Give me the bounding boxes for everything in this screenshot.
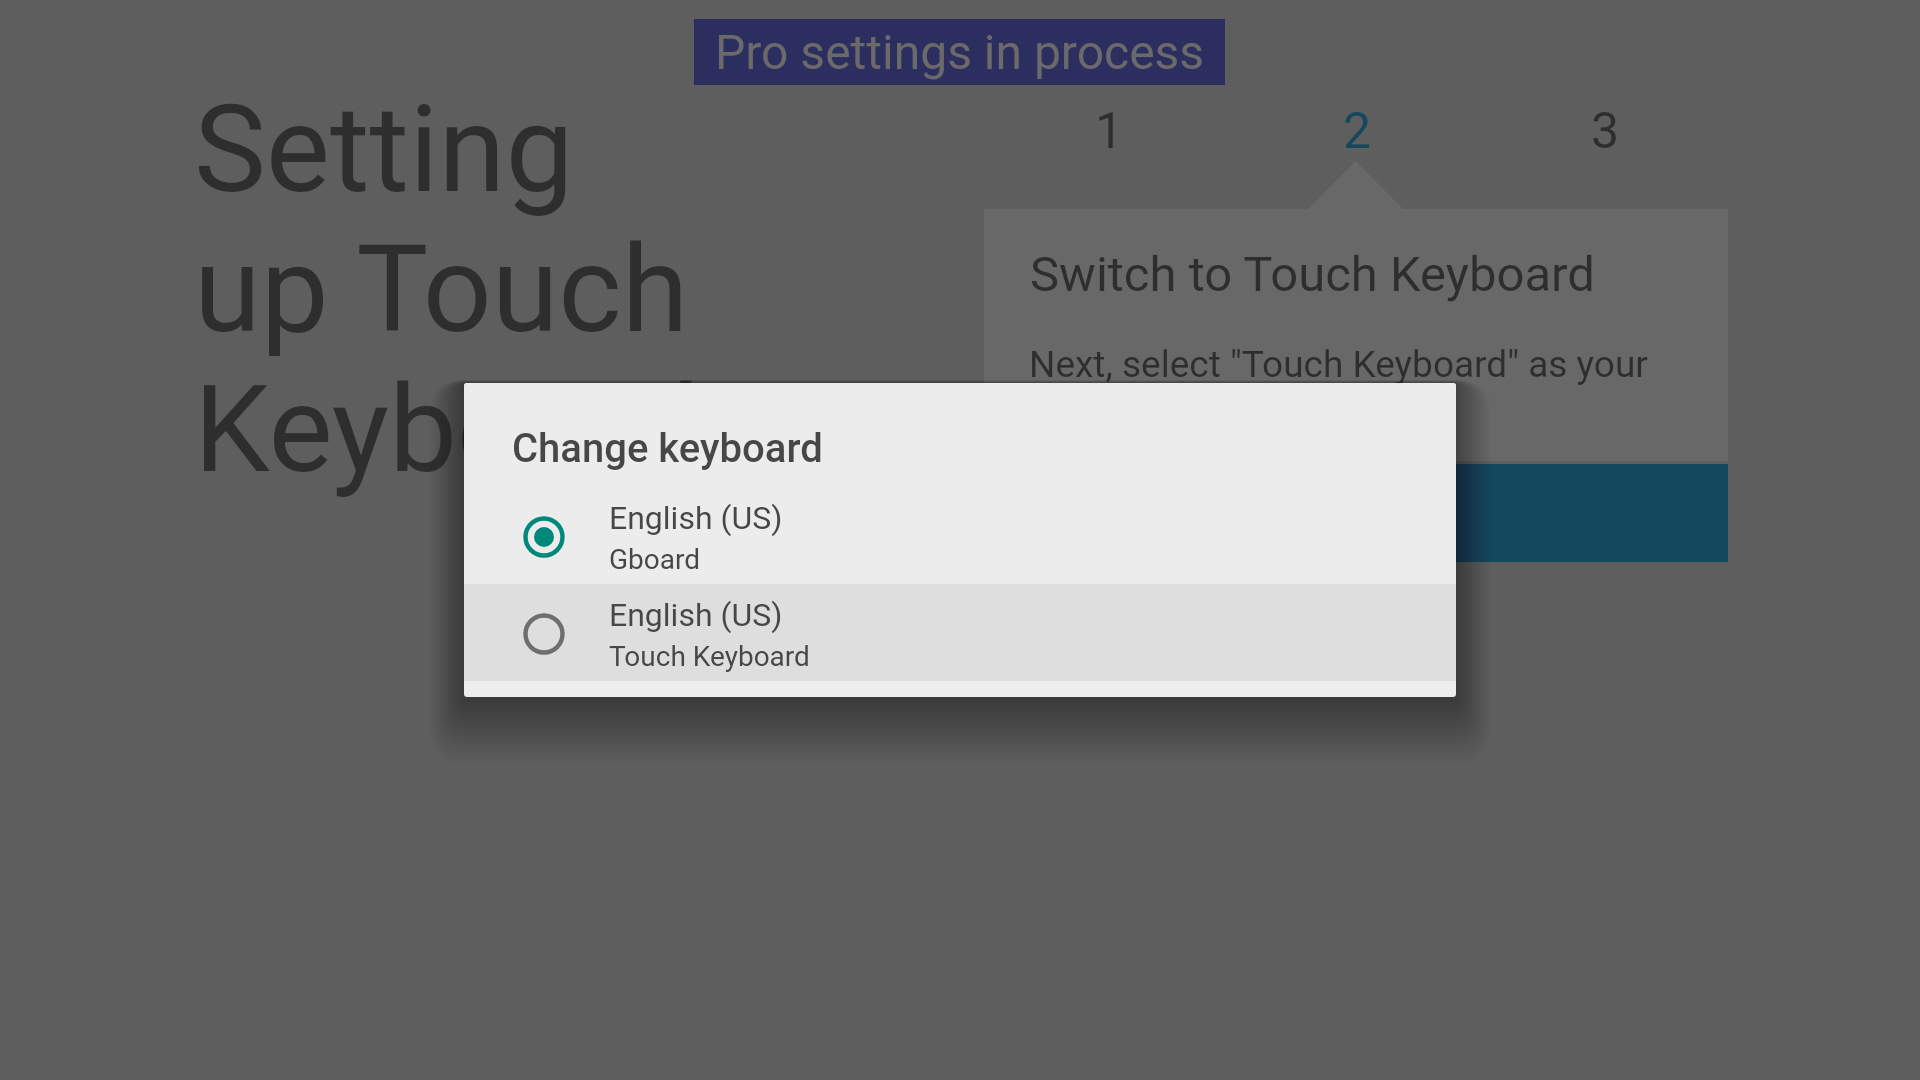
button[interactable]: Pro settings in process (694, 19, 1225, 85)
button[interactable]: English (US) (464, 584, 1456, 681)
staticText: Change keyboard (512, 425, 823, 472)
staticText: Pro settings in process (715, 24, 1205, 80)
staticText: 1 (1095, 102, 1124, 161)
staticText: English (US) (609, 596, 783, 634)
staticText: Touch Keyboard (609, 640, 810, 673)
staticText: English (US) (609, 499, 783, 537)
button[interactable]: Continue (984, 464, 1728, 562)
button[interactable]: English (US) (464, 487, 1456, 584)
staticText: 3 (1591, 102, 1620, 161)
staticText: Next, select "Touch Keyboard" as your (1029, 343, 1648, 386)
staticText: Setting up Touch Keyboard (194, 79, 700, 500)
staticText: 2 (1343, 102, 1372, 161)
staticText: Switch to Touch Keyboard (1030, 246, 1595, 303)
staticText: Gboard (609, 543, 701, 576)
